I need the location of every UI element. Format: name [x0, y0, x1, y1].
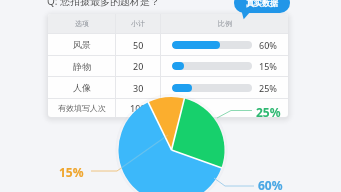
staticText: 静物	[73, 61, 91, 72]
staticText: Q: 您拍摄最多的题材是？	[47, 0, 161, 8]
staticText: 有效填写人次	[58, 103, 106, 113]
button[interactable]: 真实数据	[234, 0, 290, 20]
button[interactable]: 人像	[48, 77, 288, 98]
staticText: 20	[133, 60, 144, 72]
staticText: 50	[133, 39, 144, 51]
staticText: 30	[133, 82, 144, 94]
staticText: 选项	[75, 19, 89, 28]
staticText: 25%	[259, 82, 277, 94]
staticText: 15%	[259, 60, 277, 72]
staticText: 25%	[256, 104, 281, 120]
staticText: 60%	[258, 177, 283, 192]
staticText: 小计	[131, 19, 145, 28]
staticText: 15%	[59, 164, 84, 180]
staticText: 比例	[218, 19, 232, 28]
staticText: 人像	[73, 82, 91, 93]
button[interactable]: 静物	[48, 56, 288, 76]
button[interactable]: 风景	[48, 34, 288, 55]
staticText: 真实数据	[246, 0, 278, 8]
staticText: 60%	[259, 39, 277, 51]
staticText: 100	[130, 102, 146, 114]
staticText: 风景	[73, 39, 91, 50]
